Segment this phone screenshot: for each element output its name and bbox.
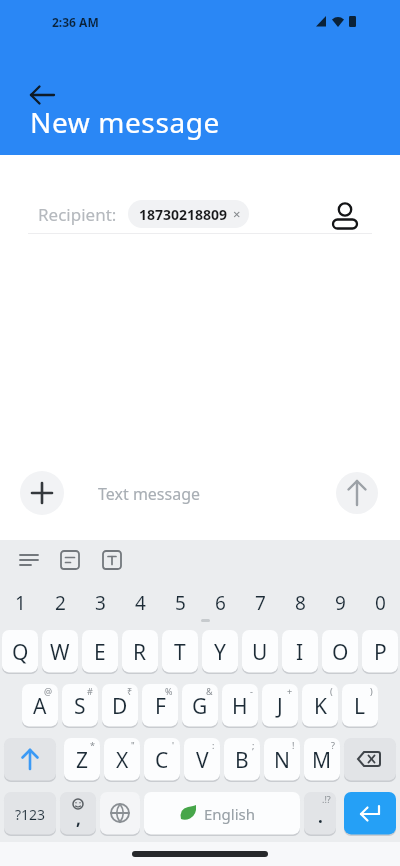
staticText: V [196, 746, 209, 775]
button[interactable]: L [342, 684, 378, 728]
staticText: + [287, 685, 293, 697]
staticText: " [131, 739, 135, 751]
staticText: A [33, 692, 47, 721]
staticText: R [133, 638, 147, 667]
staticText: C [155, 746, 169, 775]
button[interactable]: S [62, 684, 98, 728]
staticText: . [318, 805, 323, 828]
button[interactable]: H [222, 684, 258, 728]
button[interactable]: M [304, 738, 340, 782]
button[interactable]: 1 [2, 582, 38, 624]
button[interactable] [326, 196, 364, 234]
staticText: ; [252, 739, 255, 751]
button[interactable] [344, 792, 396, 836]
button[interactable]: F [142, 684, 178, 728]
staticText: ' [172, 739, 175, 751]
button[interactable]: O [322, 630, 358, 674]
button[interactable]: W [42, 630, 78, 674]
button[interactable] [12, 544, 46, 576]
button[interactable] [20, 471, 64, 515]
button[interactable]: J [262, 684, 298, 728]
button[interactable]: ?123 [4, 792, 56, 836]
staticText: M [312, 746, 332, 775]
staticText: .!? [322, 793, 331, 805]
staticText: P [374, 638, 387, 667]
staticText: J [277, 692, 283, 721]
button[interactable] [336, 472, 378, 514]
staticText: U [252, 638, 268, 667]
button[interactable] [344, 738, 396, 782]
staticText: - [250, 685, 253, 697]
button[interactable]: G [182, 684, 218, 728]
button[interactable] [53, 544, 87, 576]
staticText: W [50, 638, 70, 667]
button[interactable] [100, 792, 140, 836]
staticText: B [235, 746, 249, 775]
button[interactable]: 6 [202, 582, 238, 624]
button[interactable]: D [102, 684, 138, 728]
button[interactable]: B [224, 738, 260, 782]
button[interactable]: P [362, 630, 398, 674]
staticText: : [212, 739, 215, 751]
button[interactable]: R [122, 630, 158, 674]
staticText: Y [214, 638, 226, 667]
staticText: O [332, 638, 349, 667]
staticText: S [74, 692, 86, 721]
staticText: N [274, 746, 290, 775]
button[interactable]: E [82, 630, 118, 674]
button[interactable]: 7 [242, 582, 278, 624]
button[interactable]: 8 [282, 582, 318, 624]
staticText: F [155, 692, 166, 721]
staticText: Q [12, 638, 29, 667]
staticText: ! [292, 739, 295, 751]
button[interactable]: 4 [122, 582, 158, 624]
staticText: H [232, 692, 248, 721]
button[interactable]: English [144, 792, 300, 836]
button[interactable]: 5 [162, 582, 198, 624]
staticText: L [354, 692, 366, 721]
staticText: D [112, 692, 128, 721]
staticText: * [90, 739, 95, 751]
staticText: 5 [175, 590, 186, 616]
staticText: ₹ [127, 685, 133, 697]
button[interactable] [4, 738, 56, 782]
button[interactable] [20, 80, 64, 110]
staticText: G [192, 692, 208, 721]
button[interactable]: T [162, 630, 198, 674]
staticText: New message [30, 103, 220, 141]
button[interactable]: U [242, 630, 278, 674]
staticText: 4 [135, 590, 146, 616]
staticText: 2:36 AM [52, 14, 99, 30]
staticText: 7 [255, 590, 266, 616]
button[interactable]: Y [202, 630, 238, 674]
button[interactable]: , [60, 792, 96, 836]
staticText: , [76, 807, 81, 830]
staticText: 18730218809 [139, 205, 228, 224]
staticText: Recipient: [38, 203, 117, 226]
staticText: 8 [295, 590, 306, 616]
button[interactable]: A [22, 684, 58, 728]
staticText: & [206, 685, 213, 697]
staticText: × [233, 205, 241, 223]
button[interactable]: 0 [362, 582, 398, 624]
button[interactable]: C [144, 738, 180, 782]
button[interactable]: N [264, 738, 300, 782]
button[interactable]: 18730218809 [128, 200, 249, 228]
staticText: 9 [335, 590, 346, 616]
button[interactable]: Q [2, 630, 38, 674]
button[interactable]: Z [64, 738, 100, 782]
button[interactable]: I [282, 630, 318, 674]
button[interactable]: .!? [304, 792, 336, 836]
staticText: @ [44, 685, 53, 697]
staticText: % [165, 685, 173, 697]
staticText: 1 [15, 590, 26, 616]
button[interactable]: 9 [322, 582, 358, 624]
button[interactable]: V [184, 738, 220, 782]
button[interactable]: K [302, 684, 338, 728]
button[interactable]: 3 [82, 582, 118, 624]
staticText: 0 [375, 590, 386, 616]
button[interactable]: 2 [42, 582, 78, 624]
staticText: I [296, 638, 304, 667]
button[interactable]: X [104, 738, 140, 782]
button[interactable] [95, 544, 129, 576]
